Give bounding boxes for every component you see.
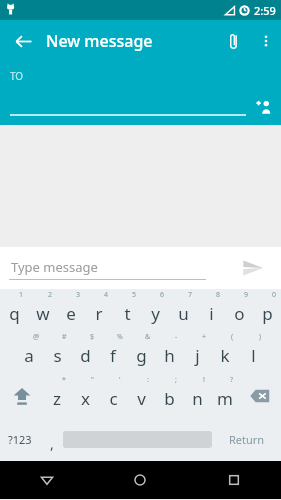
button[interactable]: ;	[155, 374, 183, 417]
staticText: k	[220, 344, 230, 367]
staticText: 2	[48, 290, 53, 300]
staticText: n	[192, 387, 203, 410]
button[interactable]: #	[43, 331, 71, 374]
staticText: $	[90, 332, 95, 342]
staticText: ;	[175, 375, 177, 385]
button[interactable]: %	[99, 331, 127, 374]
staticText: i	[209, 302, 214, 325]
staticText: ?	[230, 375, 234, 385]
staticText: 2:59	[254, 3, 276, 18]
button[interactable]: Backspace	[239, 374, 281, 417]
staticText: l	[251, 344, 256, 367]
staticText: &	[145, 332, 151, 342]
button[interactable]: -	[155, 331, 183, 374]
staticText: "	[91, 375, 94, 385]
button[interactable]: Add contact	[248, 91, 278, 121]
staticText: a	[24, 344, 34, 367]
button[interactable]: ?123	[0, 417, 40, 461]
staticText: New message	[46, 30, 153, 52]
staticText: j	[195, 344, 200, 367]
button[interactable]: ?	[211, 374, 239, 417]
staticText: Type message	[11, 258, 98, 276]
button[interactable]: Space	[63, 424, 212, 454]
button[interactable]: ,	[40, 417, 63, 461]
button[interactable]: Back	[6, 24, 40, 58]
staticText: @	[33, 332, 40, 342]
staticText: t	[124, 302, 131, 325]
button[interactable]: Send	[236, 251, 270, 285]
button[interactable]: 2	[29, 289, 57, 331]
button[interactable]: Recent apps	[187, 461, 281, 499]
staticText: :	[147, 375, 149, 385]
button[interactable]: 3	[57, 289, 85, 331]
staticText: 8	[216, 290, 221, 300]
staticText: *	[62, 375, 66, 385]
staticText: e	[66, 302, 76, 325]
button[interactable]: Shift	[0, 374, 43, 417]
button[interactable]: Attach	[217, 24, 251, 58]
staticText: 4	[104, 290, 109, 300]
staticText: Return	[229, 432, 265, 447]
staticText: w	[36, 302, 50, 325]
staticText: 5	[132, 290, 137, 300]
button[interactable]: 4	[85, 289, 113, 331]
button[interactable]: Return	[212, 417, 281, 461]
staticText: u	[178, 302, 189, 325]
staticText: d	[80, 344, 91, 367]
staticText: '	[119, 375, 121, 385]
button[interactable]: +	[183, 331, 211, 374]
staticText: (	[231, 332, 234, 342]
button[interactable]: '	[99, 374, 127, 417]
staticText: y	[151, 302, 160, 325]
staticText: 9	[244, 290, 249, 300]
staticText: )	[259, 332, 262, 342]
staticText: h	[164, 344, 175, 367]
staticText: s	[53, 344, 62, 367]
staticText: x	[81, 387, 90, 410]
staticText: 3	[76, 290, 81, 300]
staticText: o	[234, 302, 245, 325]
button[interactable]: (	[211, 331, 239, 374]
button[interactable]: @	[15, 331, 43, 374]
staticText: c	[109, 387, 118, 410]
staticText: 6	[160, 290, 165, 300]
staticText: r	[95, 302, 103, 325]
staticText: TO	[10, 69, 24, 83]
button[interactable]: )	[239, 331, 267, 374]
staticText: b	[164, 387, 175, 410]
button[interactable]: Back	[0, 461, 93, 499]
button[interactable]: Home	[93, 461, 187, 499]
staticText: +	[202, 332, 207, 342]
staticText: v	[137, 387, 146, 410]
button[interactable]: 1	[0, 289, 29, 331]
button[interactable]: 0	[253, 289, 281, 331]
staticText: q	[9, 302, 20, 325]
staticText: !	[203, 375, 205, 385]
button[interactable]: More options	[251, 26, 281, 56]
button[interactable]: 7	[169, 289, 197, 331]
staticText: ?123	[8, 432, 32, 447]
button[interactable]: 6	[141, 289, 169, 331]
staticText: ,	[50, 434, 54, 453]
staticText: m	[217, 387, 233, 410]
staticText: #	[62, 332, 67, 342]
staticText: %	[117, 332, 123, 342]
button[interactable]: $	[71, 331, 99, 374]
button[interactable]: 5	[113, 289, 141, 331]
button[interactable]: "	[71, 374, 99, 417]
button[interactable]: &	[127, 331, 155, 374]
staticText: 7	[188, 290, 193, 300]
staticText: g	[136, 344, 147, 367]
staticText: f	[110, 344, 116, 367]
button[interactable]: 8	[197, 289, 225, 331]
staticText: 0	[272, 290, 277, 300]
button[interactable]: 9	[225, 289, 253, 331]
button[interactable]: *	[43, 374, 71, 417]
staticText: 1	[19, 290, 24, 300]
staticText: z	[53, 387, 61, 410]
staticText: p	[262, 302, 273, 325]
button[interactable]: !	[183, 374, 211, 417]
staticText: -	[175, 332, 178, 342]
button[interactable]: :	[127, 374, 155, 417]
